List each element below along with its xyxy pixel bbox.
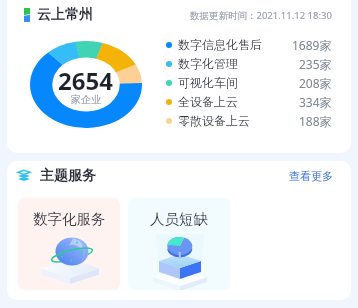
staticText: 查看更多: [289, 169, 333, 183]
button[interactable]: 可视化车间: [166, 73, 332, 92]
staticText: 全设备上云: [178, 94, 238, 109]
button[interactable]: 数字化服务: [18, 198, 120, 290]
staticText: 云上常州: [37, 6, 93, 24]
staticText: 188家: [299, 113, 332, 129]
button[interactable]: 零散设备上云: [166, 111, 332, 130]
button[interactable]: 全设备上云: [166, 92, 332, 111]
staticText: 人员短缺: [150, 210, 208, 228]
staticText: 数字化管理: [178, 56, 238, 71]
staticText: 数据更新时间：2021.11.12 18:30: [190, 9, 332, 22]
staticText: 2654: [58, 64, 113, 97]
button[interactable]: 数字化管理: [166, 54, 332, 73]
staticText: 334家: [299, 94, 332, 110]
button[interactable]: 查看更多: [287, 167, 335, 185]
staticText: 家企业: [71, 93, 101, 106]
staticText: 235家: [299, 56, 332, 72]
staticText: 数字化服务: [33, 210, 106, 228]
staticText: 主题服务: [40, 167, 96, 185]
staticText: 208家: [299, 75, 332, 91]
staticText: 1689家: [292, 37, 332, 53]
button[interactable]: 数字信息化售后: [166, 35, 332, 54]
button[interactable]: 人员短缺: [128, 198, 230, 290]
staticText: 数字信息化售后: [178, 37, 262, 52]
staticText: 零散设备上云: [178, 113, 250, 128]
staticText: 可视化车间: [178, 75, 238, 90]
